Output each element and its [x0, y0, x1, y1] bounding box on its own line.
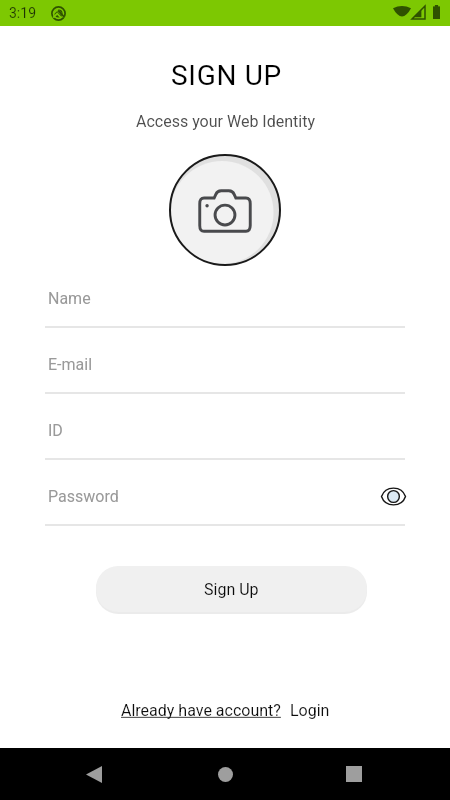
button[interactable]: Name: [45, 282, 405, 328]
staticText: Sign Up: [204, 580, 259, 599]
button[interactable]: Home: [205, 754, 245, 794]
staticText: ID: [48, 421, 63, 440]
button[interactable]: ID: [45, 414, 405, 460]
staticText: E-mail: [48, 355, 93, 374]
button[interactable]: Back: [74, 754, 114, 794]
button[interactable]: Show password: [378, 481, 408, 511]
button[interactable]: E-mail: [45, 348, 405, 394]
staticText: Already have account?: [121, 701, 285, 720]
staticText: Login: [290, 701, 330, 720]
button[interactable]: Password: [45, 480, 405, 526]
button[interactable]: Login: [290, 701, 330, 720]
staticText: SIGN UP: [171, 59, 282, 92]
staticText: Name: [48, 289, 91, 308]
staticText: Password: [48, 487, 119, 506]
button[interactable]: Add profile photo: [169, 154, 281, 266]
button[interactable]: Sign Up: [96, 566, 367, 612]
staticText: 3:19: [9, 5, 36, 21]
staticText: Access your Web Identity: [136, 112, 315, 131]
button[interactable]: Recent apps: [334, 754, 374, 794]
button[interactable]: Already have account?: [121, 701, 285, 720]
